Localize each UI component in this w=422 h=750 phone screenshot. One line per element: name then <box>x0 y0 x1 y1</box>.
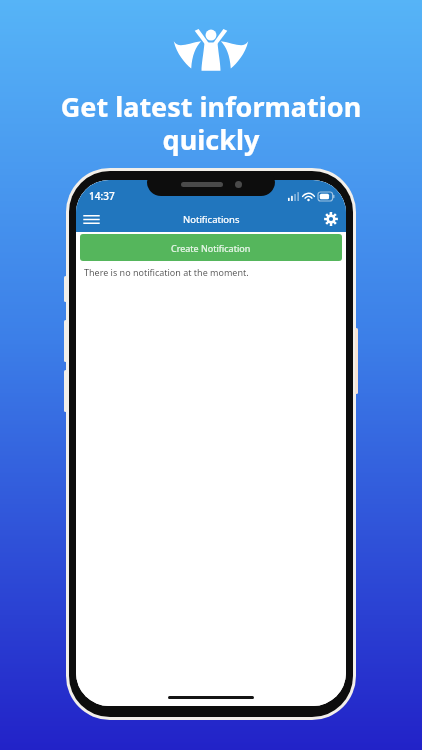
staticText: There is no notification at the moment. <box>84 266 249 278</box>
button[interactable]: Settings <box>316 206 346 232</box>
button[interactable]: Create Notification <box>80 234 342 261</box>
staticText: Notifications <box>183 213 240 226</box>
staticText: Create Notification <box>171 242 251 254</box>
button[interactable]: Menu <box>76 206 106 232</box>
staticText: 14:37 <box>89 189 115 203</box>
staticText: Get latest information quickly <box>18 88 404 158</box>
